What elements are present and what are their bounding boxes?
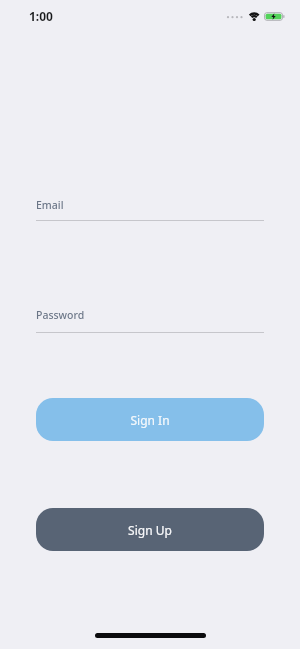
staticText: Sign Up: [128, 522, 172, 538]
staticText: 1:00: [29, 8, 53, 24]
button[interactable]: Sign In: [36, 398, 264, 441]
staticText: Sign In: [130, 412, 170, 428]
staticText: Email: [36, 198, 64, 212]
staticText: Password: [36, 308, 85, 322]
button[interactable]: Sign Up: [36, 508, 264, 551]
